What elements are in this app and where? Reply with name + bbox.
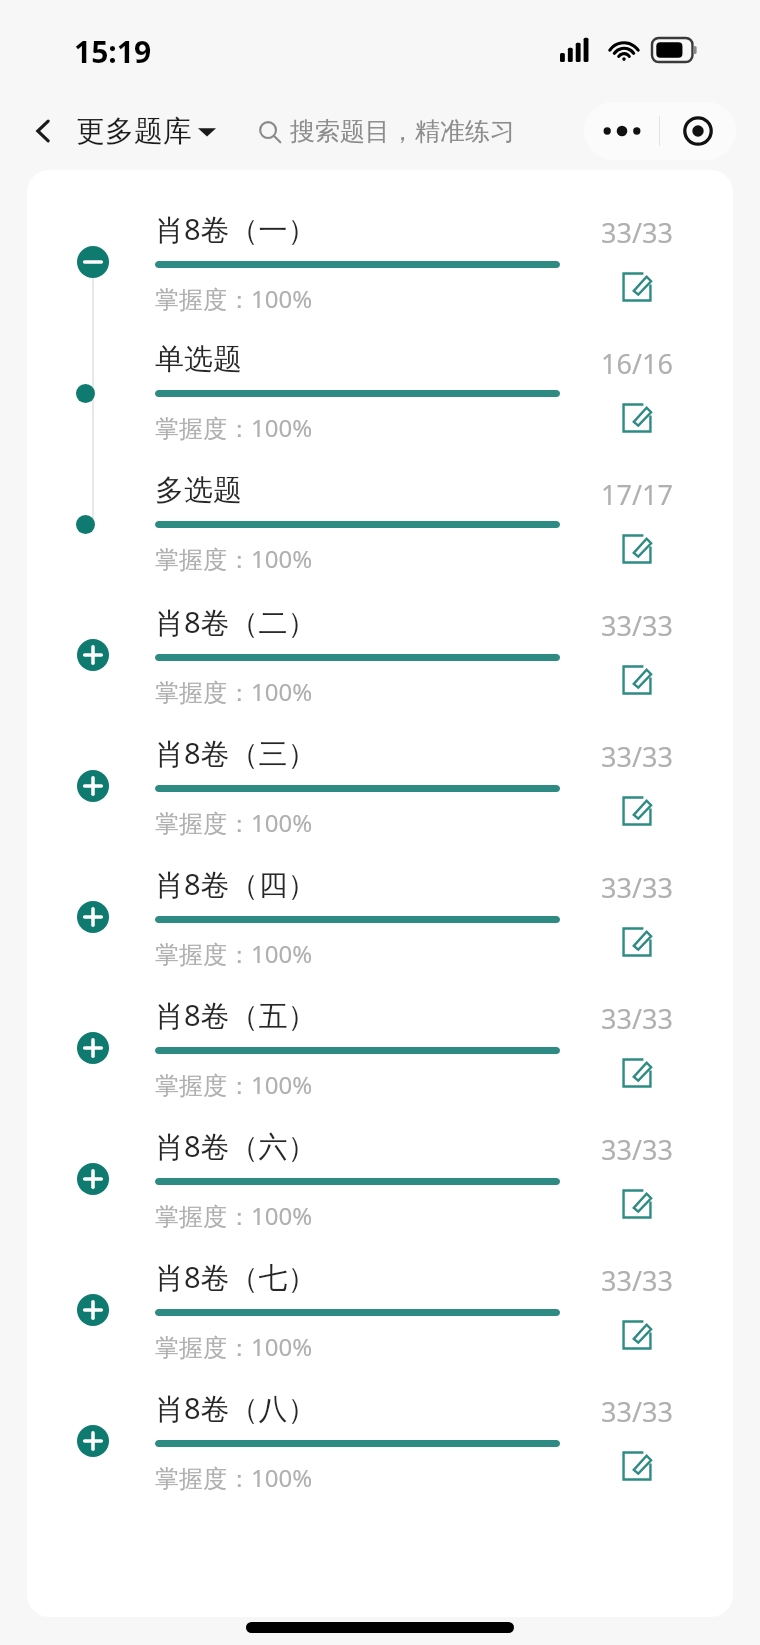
button[interactable]: Edit xyxy=(615,658,659,702)
button[interactable]: Expand xyxy=(74,382,96,404)
staticText: 33/33 xyxy=(589,738,685,775)
button[interactable]: Edit xyxy=(615,1444,659,1488)
staticText: 掌握度：100% xyxy=(155,542,313,575)
button[interactable]: Expand xyxy=(27,720,733,851)
staticText: 掌握度：100% xyxy=(155,1330,313,1363)
staticText: 掌握度：100% xyxy=(155,282,313,315)
button[interactable]: Expand xyxy=(74,1160,112,1198)
button[interactable]: Edit xyxy=(615,1182,659,1226)
button[interactable]: Expand xyxy=(27,1113,733,1244)
staticText: 33/33 xyxy=(589,1393,685,1430)
staticText: 33/33 xyxy=(589,1131,685,1168)
staticText: 肖8卷（二） xyxy=(155,602,317,642)
staticText: 掌握度：100% xyxy=(155,1199,313,1232)
button[interactable]: Expand xyxy=(27,851,733,982)
staticText: 16/16 xyxy=(589,345,685,382)
staticText: 掌握度：100% xyxy=(155,806,313,839)
button[interactable]: Edit xyxy=(615,920,659,964)
staticText: 33/33 xyxy=(589,607,685,644)
button[interactable]: Edit xyxy=(615,1313,659,1357)
staticText: 肖8卷（六） xyxy=(155,1126,317,1166)
button[interactable]: Expand xyxy=(27,589,733,720)
button[interactable]: Edit xyxy=(615,789,659,833)
staticText: 肖8卷（一） xyxy=(155,209,317,249)
staticText: 掌握度：100% xyxy=(155,675,313,708)
staticText: 多选题 xyxy=(155,472,242,509)
button[interactable]: Expand xyxy=(74,898,112,936)
staticText: 33/33 xyxy=(589,1000,685,1037)
button[interactable]: Expand xyxy=(74,636,112,674)
staticText: 33/33 xyxy=(589,1262,685,1299)
staticText: 肖8卷（三） xyxy=(155,733,317,773)
staticText: 掌握度：100% xyxy=(155,1068,313,1101)
staticText: 掌握度：100% xyxy=(155,411,313,444)
staticText: 33/33 xyxy=(589,214,685,251)
button[interactable]: Edit xyxy=(615,265,659,309)
staticText: 掌握度：100% xyxy=(155,937,313,970)
staticText: 17/17 xyxy=(589,476,685,513)
button[interactable]: Expand xyxy=(27,1375,733,1506)
button[interactable]: Expand xyxy=(74,1029,112,1067)
button[interactable]: Expand xyxy=(27,327,733,458)
button[interactable]: Edit xyxy=(615,527,659,571)
button[interactable]: Expand xyxy=(74,767,112,805)
staticText: 搜索题目，精准练习 xyxy=(290,116,515,147)
staticText: 更多题库 xyxy=(76,113,192,150)
button[interactable]: Collapse xyxy=(27,196,733,327)
staticText: 肖8卷（八） xyxy=(155,1388,317,1428)
staticText: 15:19 xyxy=(74,31,152,72)
button[interactable]: Edit xyxy=(615,1051,659,1095)
staticText: 肖8卷（五） xyxy=(155,995,317,1035)
button[interactable]: Expand xyxy=(74,1291,112,1329)
button[interactable]: Edit xyxy=(615,396,659,440)
button[interactable]: Expand xyxy=(74,1422,112,1460)
button[interactable]: Expand xyxy=(74,513,96,535)
button[interactable]: 搜索题目，精准练习 xyxy=(258,116,515,147)
button[interactable]: Expand xyxy=(27,458,733,589)
button[interactable]: 更多题库 xyxy=(76,113,216,150)
staticText: 33/33 xyxy=(589,869,685,906)
button[interactable]: Collapse xyxy=(74,243,112,281)
button[interactable]: Back xyxy=(22,109,66,153)
staticText: 肖8卷（四） xyxy=(155,864,317,904)
button[interactable]: Expand xyxy=(27,982,733,1113)
staticText: 单选题 xyxy=(155,341,242,378)
button[interactable]: Close xyxy=(660,102,736,160)
button[interactable]: Expand xyxy=(27,1244,733,1375)
staticText: 掌握度：100% xyxy=(155,1461,313,1494)
staticText: 肖8卷（七） xyxy=(155,1257,317,1297)
button[interactable]: More xyxy=(584,102,659,160)
